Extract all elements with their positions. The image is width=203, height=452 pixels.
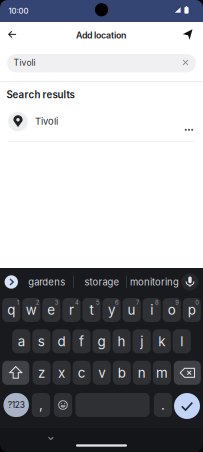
staticText: storage bbox=[84, 276, 119, 288]
button[interactable]: x bbox=[53, 361, 71, 385]
staticText: b bbox=[118, 365, 126, 381]
button[interactable]: m bbox=[153, 361, 171, 385]
button[interactable]: n bbox=[133, 361, 151, 385]
staticText: 3 bbox=[55, 299, 59, 306]
staticText: h bbox=[118, 333, 126, 349]
button[interactable]: l bbox=[173, 329, 191, 353]
button[interactable]: a bbox=[12, 329, 30, 353]
staticText: ?123 bbox=[8, 400, 25, 410]
staticText: 7 bbox=[136, 299, 139, 306]
staticText: e bbox=[47, 302, 55, 318]
button[interactable]: b bbox=[113, 361, 131, 385]
staticText: Tivoli bbox=[13, 57, 35, 68]
button[interactable]: o bbox=[163, 298, 181, 322]
button[interactable]: monitoring bbox=[125, 273, 183, 291]
button[interactable]: More options bbox=[182, 125, 196, 135]
staticText: monitoring bbox=[130, 276, 179, 288]
staticText: k bbox=[158, 333, 165, 349]
staticText: x bbox=[58, 365, 65, 381]
button[interactable]: Clear search bbox=[182, 59, 188, 65]
staticText: p bbox=[188, 302, 196, 318]
staticText: i bbox=[150, 302, 153, 318]
staticText: f bbox=[79, 333, 84, 349]
staticText: . bbox=[161, 397, 165, 413]
button[interactable]: v bbox=[93, 361, 111, 385]
button[interactable]: . bbox=[154, 393, 172, 417]
staticText: Tivoli bbox=[35, 116, 58, 127]
button[interactable]: q bbox=[2, 298, 20, 322]
button[interactable]: f bbox=[72, 329, 90, 353]
button[interactable]: Back bbox=[8, 31, 17, 38]
staticText: 2 bbox=[36, 299, 39, 306]
staticText: c bbox=[78, 365, 86, 381]
button[interactable]: , bbox=[32, 393, 50, 417]
staticText: 10:00 bbox=[9, 6, 29, 16]
button[interactable]: Symbols keyboard bbox=[3, 393, 29, 417]
staticText: 9 bbox=[175, 299, 179, 306]
button[interactable]: storage bbox=[83, 273, 121, 291]
button[interactable]: j bbox=[133, 329, 151, 353]
staticText: gardens bbox=[28, 276, 65, 288]
staticText: o bbox=[168, 302, 176, 318]
staticText: r bbox=[69, 302, 74, 318]
staticText: m bbox=[156, 365, 168, 381]
button[interactable]: s bbox=[32, 329, 50, 353]
button[interactable]: Done bbox=[174, 393, 200, 419]
staticText: n bbox=[138, 365, 146, 381]
button[interactable]: r bbox=[62, 298, 80, 322]
staticText: y bbox=[108, 302, 115, 318]
staticText: 8 bbox=[155, 299, 159, 306]
button[interactable]: d bbox=[52, 329, 70, 353]
button[interactable]: k bbox=[153, 329, 171, 353]
button[interactable]: z bbox=[32, 361, 51, 385]
staticText: , bbox=[39, 397, 43, 413]
button[interactable]: Send location bbox=[182, 29, 193, 40]
staticText: 4 bbox=[75, 299, 79, 306]
staticText: z bbox=[38, 365, 45, 381]
button[interactable]: Voice input bbox=[181, 273, 198, 290]
button[interactable]: Tivoli bbox=[0, 102, 203, 141]
staticText: j bbox=[140, 333, 143, 349]
staticText: 5 bbox=[96, 299, 99, 306]
staticText: Add location bbox=[76, 30, 126, 40]
button[interactable]: u bbox=[123, 298, 141, 322]
button[interactable]: e bbox=[42, 298, 60, 322]
staticText: q bbox=[7, 302, 15, 318]
button[interactable]: Delete bbox=[174, 361, 201, 385]
staticText: 1 bbox=[17, 299, 19, 306]
staticText: Search results bbox=[7, 89, 75, 100]
button[interactable]: c bbox=[73, 361, 91, 385]
staticText: t bbox=[89, 302, 93, 318]
staticText: l bbox=[180, 333, 183, 349]
button[interactable]: h bbox=[112, 329, 131, 353]
button[interactable]: y bbox=[102, 298, 121, 322]
button[interactable]: g bbox=[92, 329, 111, 353]
staticText: s bbox=[38, 333, 45, 349]
staticText: d bbox=[57, 333, 65, 349]
button[interactable]: gardens bbox=[27, 273, 67, 291]
button[interactable]: Shift bbox=[2, 361, 29, 385]
button[interactable]: w bbox=[22, 298, 40, 322]
button[interactable]: Expand toolbar bbox=[5, 275, 18, 289]
button[interactable]: Hide keyboard bbox=[48, 437, 54, 440]
staticText: v bbox=[98, 365, 105, 381]
button[interactable]: t bbox=[82, 298, 100, 322]
button[interactable]: i bbox=[143, 298, 161, 322]
staticText: g bbox=[97, 333, 105, 349]
staticText: a bbox=[18, 333, 25, 349]
staticText: 6 bbox=[115, 299, 119, 306]
button[interactable]: Emoji bbox=[54, 393, 72, 417]
staticText: u bbox=[128, 302, 136, 318]
button[interactable]: p bbox=[183, 298, 201, 322]
staticText: 0 bbox=[195, 299, 199, 306]
staticText: w bbox=[26, 302, 37, 318]
